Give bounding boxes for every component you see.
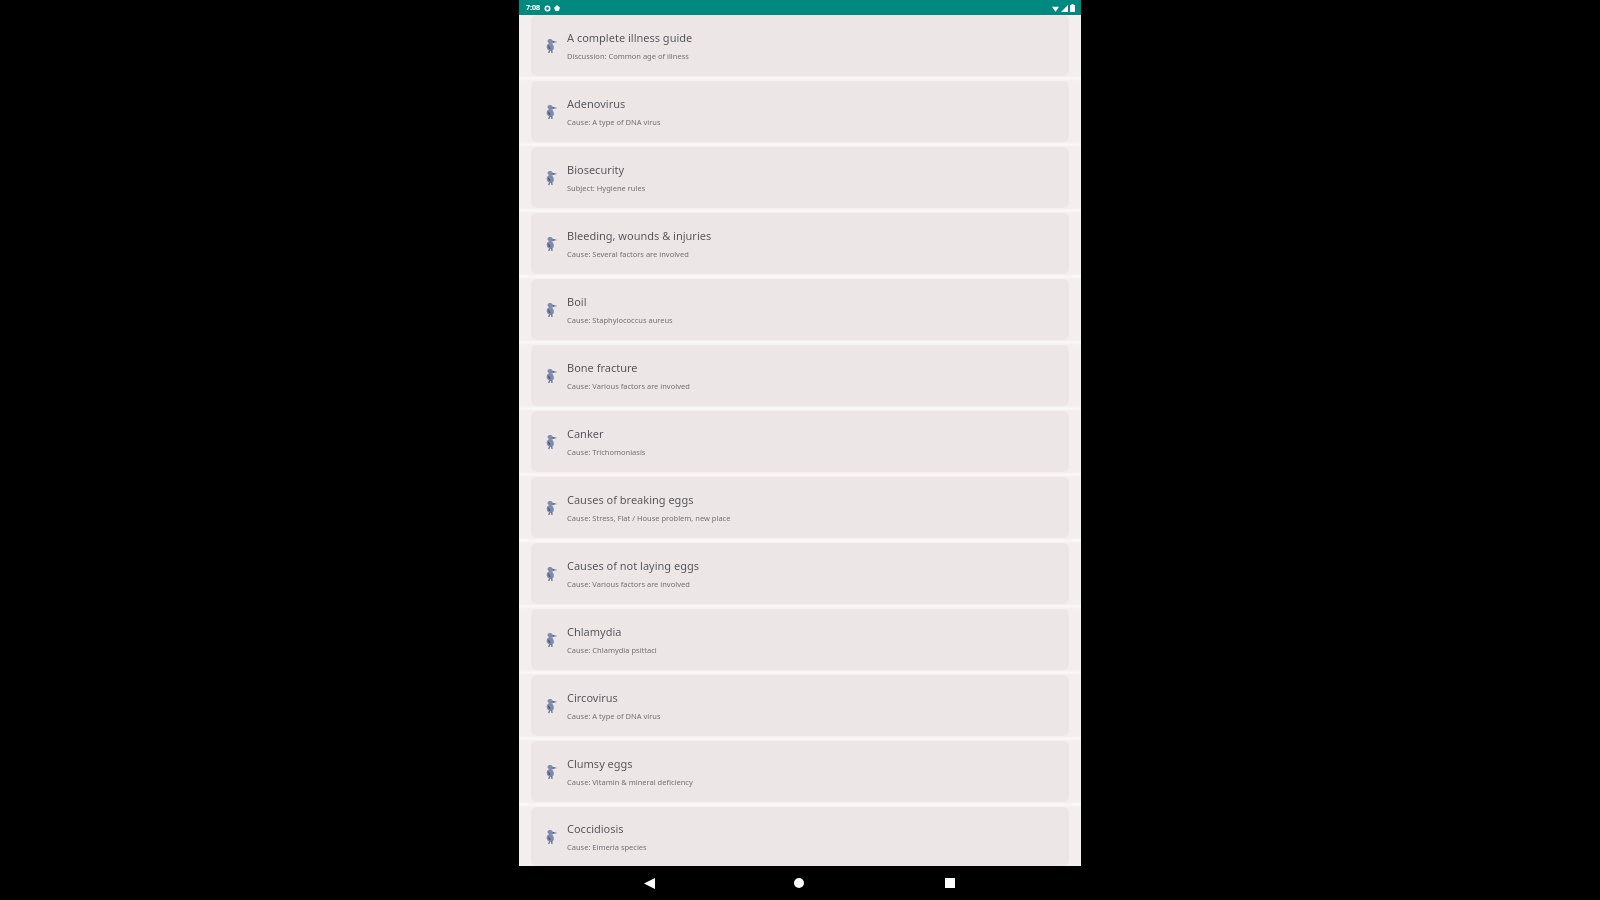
staticText: Discussion: Common age of illness <box>567 51 689 61</box>
staticText: Cause: Eimeria species <box>567 842 647 852</box>
other: Poultry <box>543 302 558 317</box>
button[interactable]: Poultry <box>531 543 1069 604</box>
button[interactable]: Back <box>629 866 669 900</box>
staticText: Cause: Stress, Flat / House problem, new… <box>567 513 731 523</box>
other: Poultry <box>543 104 558 119</box>
other: Poultry <box>543 368 558 383</box>
button[interactable]: Poultry <box>531 477 1069 538</box>
staticText: Coccidiosis <box>567 821 624 836</box>
staticText: Bleeding, wounds & injuries <box>567 228 712 243</box>
button[interactable]: Poultry <box>531 807 1069 866</box>
button[interactable]: Poultry <box>531 411 1069 472</box>
staticText: Adenovirus <box>567 96 626 111</box>
button[interactable]: Home <box>779 866 819 900</box>
other: Poultry <box>543 38 558 53</box>
button[interactable]: Poultry <box>531 279 1069 340</box>
staticText: Canker <box>567 426 604 441</box>
button[interactable]: Poultry <box>531 213 1069 274</box>
staticText: Cause: Several factors are involved <box>567 249 689 259</box>
other: Poultry <box>543 236 558 251</box>
staticText: Cause: A type of DNA virus <box>567 117 661 127</box>
staticText: Cause: Vitamin & mineral deficiency <box>567 777 693 787</box>
staticText: Clumsy eggs <box>567 756 633 771</box>
button[interactable]: Recent apps <box>930 866 970 900</box>
staticText: Cause: Chlamydia psittaci <box>567 645 657 655</box>
staticText: Cause: Staphylococcus aureus <box>567 315 673 325</box>
button[interactable]: Poultry <box>531 147 1069 208</box>
button[interactable]: Poultry <box>531 609 1069 670</box>
staticText: Boil <box>567 294 587 309</box>
other: Poultry <box>543 632 558 647</box>
button[interactable]: Poultry <box>531 675 1069 736</box>
button[interactable]: Poultry <box>531 15 1069 76</box>
staticText: Bone fracture <box>567 360 638 375</box>
staticText: A complete illness guide <box>567 30 693 45</box>
staticText: Cause: Various factors are involved <box>567 579 690 589</box>
staticText: Chlamydia <box>567 624 622 639</box>
other: Poultry <box>543 764 558 779</box>
staticText: Causes of not laying eggs <box>567 558 699 573</box>
staticText: Circovirus <box>567 690 618 705</box>
staticText: Cause: Various factors are involved <box>567 381 690 391</box>
staticText: Cause: Trichomoniasis <box>567 447 646 457</box>
button[interactable]: Poultry <box>531 345 1069 406</box>
staticText: 7:08 <box>526 3 540 13</box>
button[interactable]: Poultry <box>531 741 1069 802</box>
other: Poultry <box>543 698 558 713</box>
other: Poultry <box>543 170 558 185</box>
staticText: Cause: A type of DNA virus <box>567 711 661 721</box>
other: Poultry <box>543 829 558 844</box>
staticText: Subject: Hygiene rules <box>567 183 646 193</box>
other: Poultry <box>543 500 558 515</box>
staticText: Causes of breaking eggs <box>567 492 694 507</box>
button[interactable]: Poultry <box>531 81 1069 142</box>
other: Poultry <box>543 434 558 449</box>
other: Poultry <box>543 566 558 581</box>
staticText: Biosecurity <box>567 162 625 177</box>
